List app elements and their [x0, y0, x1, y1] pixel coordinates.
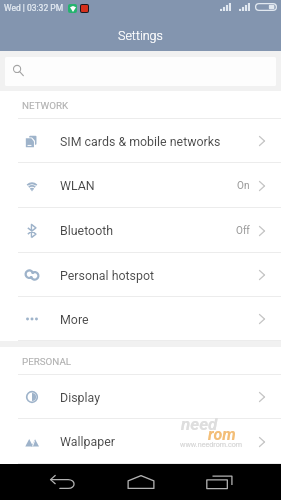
staticText: Bluetooth [60, 223, 114, 238]
button[interactable]: Personal hotspot [0, 253, 281, 297]
staticText: www.needrom.com [180, 440, 243, 448]
staticText: Wallpaper [60, 434, 115, 449]
button[interactable]: Display [0, 375, 281, 419]
staticText: Display [60, 390, 101, 405]
button[interactable]: More [0, 297, 281, 341]
staticText: rom [208, 425, 236, 444]
button[interactable]: Back [24, 464, 102, 500]
button[interactable]: Bluetooth [0, 208, 281, 253]
button[interactable]: Wallpaper [0, 419, 281, 464]
staticText: Settings [118, 28, 163, 43]
button[interactable]: Home [102, 464, 180, 500]
staticText: Off [236, 225, 250, 237]
staticText: WLAN [60, 178, 95, 193]
staticText: need [181, 414, 218, 434]
staticText: SIM cards & mobile networks [60, 134, 221, 149]
staticText: More [60, 312, 89, 327]
staticText: Wed | 03:32 PM [4, 3, 64, 13]
button[interactable]: SIM cards & mobile networks [0, 119, 281, 163]
button[interactable]: Recent apps [180, 464, 258, 500]
staticText: PERSONAL [22, 356, 72, 367]
button[interactable]: WLAN [0, 163, 281, 208]
staticText: Personal hotspot [60, 268, 155, 283]
staticText: On [237, 180, 250, 192]
button[interactable]: Search settings [5, 57, 276, 86]
staticText: NETWORK [22, 100, 69, 111]
